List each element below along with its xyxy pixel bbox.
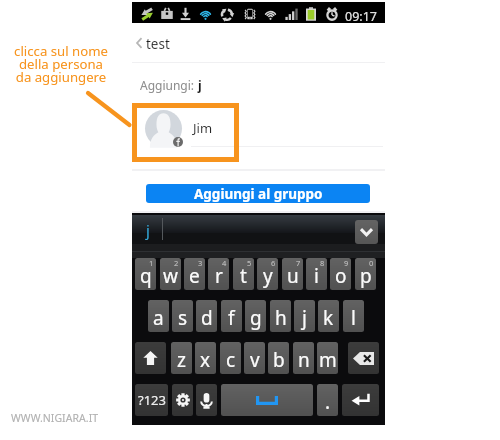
staticText: d: [201, 305, 213, 331]
button[interactable]: p: [355, 258, 376, 290]
button[interactable]: f: [221, 300, 242, 332]
button[interactable]: Backspace: [348, 342, 379, 374]
staticText: test: [146, 35, 170, 53]
staticText: 3: [198, 258, 203, 268]
staticText: Aggiungi al gruppo: [194, 185, 323, 203]
staticText: j: [302, 305, 307, 331]
staticText: 09:17: [345, 8, 377, 25]
staticText: Aggiungi:: [140, 77, 195, 93]
button[interactable]: s: [172, 300, 193, 332]
staticText: Jim: [193, 119, 213, 137]
button[interactable]: y: [257, 258, 278, 290]
staticText: l: [351, 305, 356, 331]
staticText: r: [215, 263, 223, 289]
button[interactable]: n: [293, 342, 314, 374]
staticText: q: [140, 263, 152, 289]
button[interactable]: [132, 103, 239, 162]
button[interactable]: g: [245, 300, 266, 332]
button[interactable]: ?123: [135, 384, 168, 416]
button[interactable]: r: [208, 258, 229, 290]
button[interactable]: i: [306, 258, 327, 290]
staticText: c: [226, 347, 236, 373]
staticText: g: [250, 305, 262, 331]
staticText: 0: [369, 258, 374, 268]
staticText: f: [228, 305, 235, 331]
staticText: i: [314, 263, 319, 289]
button[interactable]: b: [268, 342, 289, 374]
staticText: w: [163, 263, 178, 289]
staticText: y: [263, 263, 273, 289]
button[interactable]: Space: [221, 384, 313, 416]
button[interactable]: [132, 23, 385, 62]
button[interactable]: Show more suggestions: [355, 220, 378, 244]
staticText: t: [240, 263, 247, 289]
button[interactable]: k: [318, 300, 339, 332]
staticText: n: [298, 347, 310, 373]
button[interactable]: l: [343, 300, 364, 332]
button[interactable]: d: [196, 300, 217, 332]
staticText: s: [178, 305, 188, 331]
button[interactable]: o: [330, 258, 351, 290]
staticText: 4: [222, 258, 227, 268]
staticText: k: [323, 305, 334, 331]
staticText: b: [273, 347, 285, 373]
button[interactable]: Settings: [172, 384, 193, 416]
staticText: 2: [174, 258, 179, 268]
button[interactable]: .: [317, 384, 338, 416]
staticText: x: [200, 347, 211, 373]
staticText: 1: [149, 258, 154, 268]
staticText: ?123: [138, 391, 166, 409]
button[interactable]: a: [148, 300, 169, 332]
staticText: 6: [271, 258, 276, 268]
other: Back: [136, 37, 142, 49]
staticText: WWW.NIGIARA.IT: [11, 411, 99, 425]
staticText: v: [250, 347, 260, 373]
button[interactable]: h: [270, 300, 291, 332]
staticText: 5: [247, 258, 252, 268]
staticText: p: [360, 263, 372, 289]
staticText: 8: [320, 258, 325, 268]
staticText: clicca sul nome della persona da aggiung…: [2, 42, 120, 86]
staticText: o: [335, 263, 347, 289]
button[interactable]: w: [160, 258, 181, 290]
button[interactable]: Aggiungi al gruppo: [146, 184, 370, 203]
button[interactable]: t: [233, 258, 254, 290]
staticText: 9: [344, 258, 349, 268]
staticText: 7: [296, 258, 301, 268]
button[interactable]: [132, 103, 385, 161]
staticText: u: [287, 263, 299, 289]
button[interactable]: v: [244, 342, 265, 374]
staticText: .: [325, 389, 331, 415]
staticText: a: [153, 305, 164, 331]
button[interactable]: j: [294, 300, 315, 332]
button[interactable]: e: [184, 258, 205, 290]
staticText: m: [319, 347, 337, 373]
button[interactable]: m: [317, 342, 338, 374]
button[interactable]: u: [282, 258, 303, 290]
staticText: j: [146, 220, 150, 240]
staticText: z: [177, 347, 186, 373]
staticText: h: [275, 305, 287, 331]
staticText: e: [189, 263, 200, 289]
button[interactable]: c: [220, 342, 241, 374]
button[interactable]: q: [135, 258, 156, 290]
staticText: j: [198, 77, 202, 94]
button[interactable]: Voice input: [196, 384, 217, 416]
button[interactable]: z: [171, 342, 192, 374]
button[interactable]: Enter: [342, 384, 379, 416]
button[interactable]: x: [195, 342, 216, 374]
button[interactable]: Shift: [135, 342, 166, 374]
